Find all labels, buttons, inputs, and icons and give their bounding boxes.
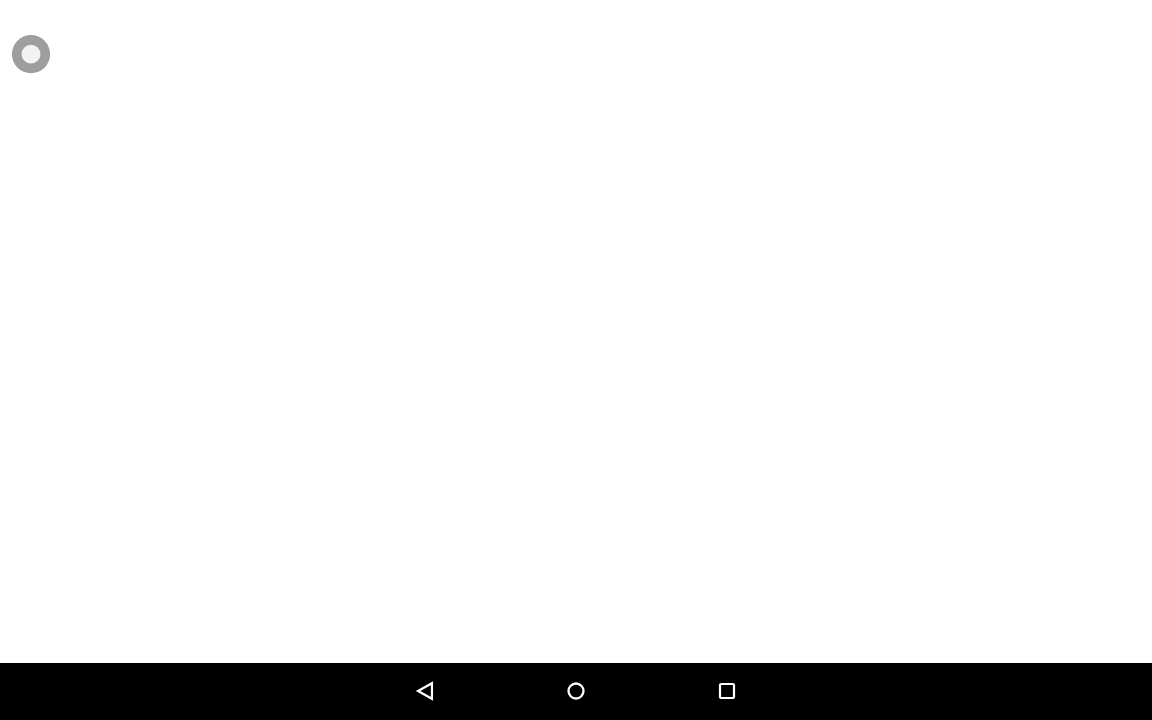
button[interactable]: Home (552, 667, 600, 715)
button[interactable]: Loading (7, 30, 55, 78)
button[interactable]: Recent apps (703, 667, 751, 715)
button[interactable]: Back (401, 667, 449, 715)
